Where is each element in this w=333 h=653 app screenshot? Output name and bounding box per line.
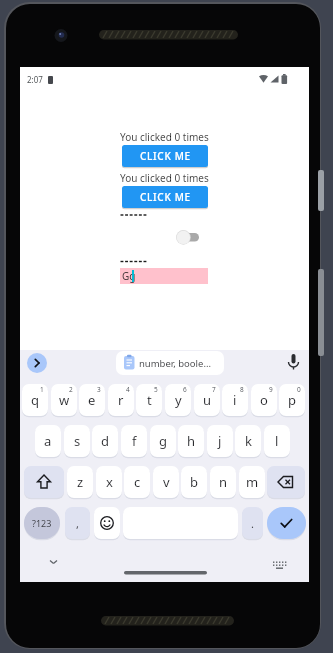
button[interactable]: s: [64, 425, 90, 457]
staticText: s: [74, 432, 81, 450]
button[interactable]: [24, 466, 64, 498]
button[interactable]: [267, 466, 305, 498]
staticText: 8: [240, 385, 244, 394]
button[interactable]: z: [67, 466, 93, 498]
staticText: r: [118, 391, 124, 409]
staticText: i: [233, 391, 237, 409]
staticText: Gg: [122, 269, 136, 283]
button[interactable]: i: [222, 384, 248, 416]
button[interactable]: v: [153, 466, 179, 498]
button[interactable]: p: [279, 384, 305, 416]
staticText: 6: [183, 385, 187, 394]
staticText: l: [275, 432, 279, 450]
button[interactable]: w: [51, 384, 77, 416]
staticText: x: [106, 473, 113, 491]
button[interactable]: [94, 507, 120, 539]
staticText: 7: [212, 385, 216, 394]
staticText: p: [288, 391, 296, 409]
button[interactable]: l: [264, 425, 290, 457]
staticText: o: [260, 391, 268, 409]
button[interactable]: [27, 353, 47, 373]
staticText: ,: [76, 516, 79, 531]
staticText: y: [175, 391, 182, 409]
button[interactable]: ?123: [24, 507, 60, 539]
button[interactable]: e: [79, 384, 105, 416]
staticText: 4: [126, 385, 130, 394]
staticText: k: [245, 432, 252, 450]
button[interactable]: Gg: [120, 268, 208, 284]
staticText: 2:07: [27, 74, 43, 85]
button[interactable]: CLICK ME: [122, 145, 208, 167]
staticText: v: [163, 473, 170, 491]
staticText: d: [101, 432, 109, 450]
button[interactable]: k: [235, 425, 261, 457]
button[interactable]: c: [124, 466, 150, 498]
button[interactable]: CLICK ME: [122, 186, 208, 208]
button[interactable]: .: [242, 507, 263, 539]
button[interactable]: n: [210, 466, 236, 498]
button[interactable]: d: [92, 425, 118, 457]
staticText: w: [59, 391, 70, 409]
button[interactable]: y: [165, 384, 191, 416]
staticText: h: [187, 432, 196, 450]
staticText: t: [147, 391, 152, 409]
button[interactable]: h: [178, 425, 204, 457]
staticText: c: [134, 473, 141, 491]
staticText: 5: [154, 385, 158, 394]
button[interactable]: f: [121, 425, 147, 457]
staticText: 3: [97, 385, 101, 394]
staticText: You clicked 0 times: [120, 130, 209, 144]
staticText: 2: [69, 385, 73, 394]
button[interactable]: m: [239, 466, 265, 498]
button[interactable]: a: [35, 425, 61, 457]
staticText: number, boole...: [139, 357, 212, 370]
staticText: 0: [297, 385, 301, 394]
button[interactable]: b: [181, 466, 207, 498]
staticText: CLICK ME: [140, 149, 191, 163]
staticText: g: [159, 432, 167, 450]
button[interactable]: j: [207, 425, 233, 457]
staticText: b: [190, 473, 198, 491]
staticText: u: [203, 391, 212, 409]
staticText: ?123: [32, 517, 52, 529]
staticText: f: [132, 432, 137, 450]
staticText: CLICK ME: [140, 190, 191, 204]
button[interactable]: r: [108, 384, 134, 416]
staticText: n: [219, 473, 228, 491]
button[interactable]: o: [251, 384, 277, 416]
staticText: You clicked 0 times: [120, 171, 209, 185]
button[interactable]: g: [150, 425, 176, 457]
staticText: z: [77, 473, 84, 491]
staticText: j: [218, 432, 222, 450]
staticText: q: [31, 391, 39, 409]
button[interactable]: [267, 507, 306, 539]
staticText: m: [246, 473, 259, 491]
staticText: .: [251, 516, 254, 531]
staticText: e: [88, 391, 96, 409]
button[interactable]: u: [194, 384, 220, 416]
button[interactable]: ,: [65, 507, 90, 539]
staticText: a: [44, 432, 52, 450]
button[interactable]: q: [22, 384, 48, 416]
staticText: 9: [269, 385, 273, 394]
button[interactable]: x: [96, 466, 122, 498]
button[interactable]: t: [136, 384, 162, 416]
button[interactable]: [175, 228, 208, 247]
staticText: 1: [40, 385, 44, 394]
button[interactable]: number, boole...: [116, 351, 224, 375]
